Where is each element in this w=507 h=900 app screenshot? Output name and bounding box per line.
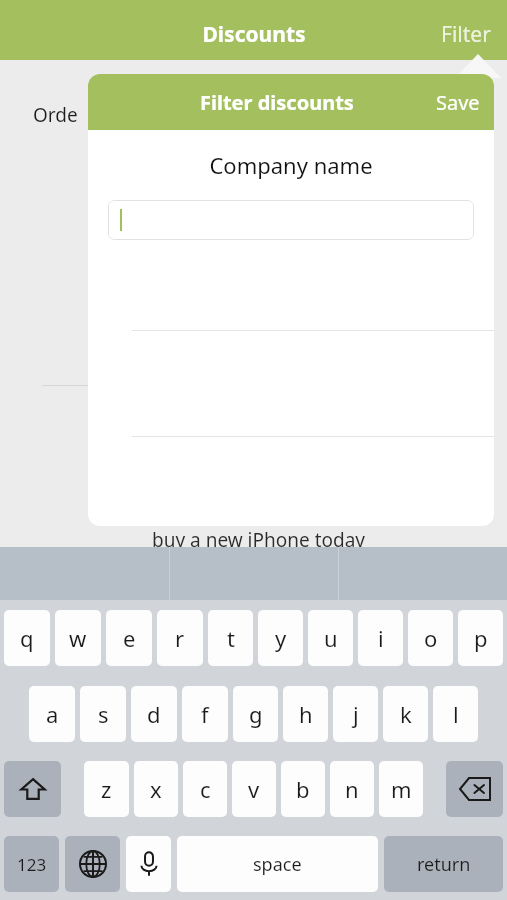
button[interactable]: g: [233, 686, 278, 742]
button[interactable]: Backspace: [446, 761, 503, 817]
button[interactable]: i: [358, 610, 403, 666]
button[interactable]: j: [333, 686, 378, 742]
button[interactable]: t: [208, 610, 253, 666]
staticText: 123: [17, 853, 47, 876]
staticText: v: [248, 774, 260, 804]
staticText: g: [249, 699, 263, 729]
button[interactable]: space: [177, 836, 378, 892]
button[interactable]: l: [433, 686, 478, 742]
staticText: Filter: [441, 20, 491, 49]
button[interactable]: x: [134, 761, 178, 817]
button[interactable]: s: [80, 686, 126, 742]
staticText: b: [296, 774, 310, 804]
staticText: q: [20, 623, 34, 653]
staticText: space: [253, 852, 302, 877]
button[interactable]: n: [330, 761, 374, 817]
staticText: e: [123, 623, 136, 653]
button[interactable]: y: [258, 610, 303, 666]
button[interactable]: v: [232, 761, 276, 817]
button[interactable]: Shift: [4, 761, 61, 817]
button[interactable]: k: [383, 686, 428, 742]
button[interactable]: 123: [4, 836, 59, 892]
staticText: return: [417, 852, 471, 877]
button[interactable]: w: [55, 610, 101, 666]
staticText: z: [101, 774, 112, 804]
button[interactable]: a: [29, 686, 75, 742]
button[interactable]: p: [458, 610, 503, 666]
staticText: Discounts: [202, 20, 306, 49]
staticText: d: [147, 699, 161, 729]
button[interactable]: f: [182, 686, 228, 742]
button[interactable]: m: [379, 761, 423, 817]
staticText: l: [453, 699, 459, 729]
button[interactable]: Filter: [425, 12, 507, 57]
button[interactable]: Save: [422, 81, 494, 124]
staticText: buy a new iPhone today: [152, 527, 366, 553]
staticText: i: [378, 623, 384, 653]
button[interactable]: z: [84, 761, 129, 817]
button[interactable]: h: [283, 686, 328, 742]
staticText: a: [46, 699, 59, 729]
staticText: r: [175, 623, 185, 653]
button[interactable]: return: [384, 836, 503, 892]
button[interactable]: b: [281, 761, 325, 817]
staticText: u: [324, 623, 338, 653]
staticText: x: [150, 774, 162, 804]
staticText: p: [474, 623, 488, 653]
button[interactable]: o: [408, 610, 453, 666]
button[interactable]: d: [131, 686, 177, 742]
staticText: k: [400, 699, 412, 729]
staticText: w: [69, 623, 87, 653]
button[interactable]: r: [157, 610, 203, 666]
button[interactable]: u: [308, 610, 353, 666]
staticText: Orde: [33, 102, 78, 128]
staticText: n: [345, 774, 359, 804]
staticText: Company name: [88, 150, 494, 180]
staticText: h: [299, 699, 313, 729]
staticText: m: [391, 774, 412, 804]
staticText: s: [98, 699, 109, 729]
staticText: o: [424, 623, 438, 653]
button[interactable]: c: [183, 761, 227, 817]
button[interactable]: [108, 200, 474, 240]
button[interactable]: Switch keyboard language: [65, 836, 120, 892]
button[interactable]: q: [4, 610, 50, 666]
staticText: f: [201, 699, 209, 729]
button[interactable]: Dictate: [126, 836, 171, 892]
button[interactable]: e: [106, 610, 152, 666]
staticText: c: [200, 774, 211, 804]
staticText: t: [227, 623, 235, 653]
staticText: j: [353, 699, 359, 729]
staticText: y: [275, 623, 287, 653]
staticText: Save: [436, 89, 480, 116]
staticText: Filter discounts: [200, 89, 354, 116]
